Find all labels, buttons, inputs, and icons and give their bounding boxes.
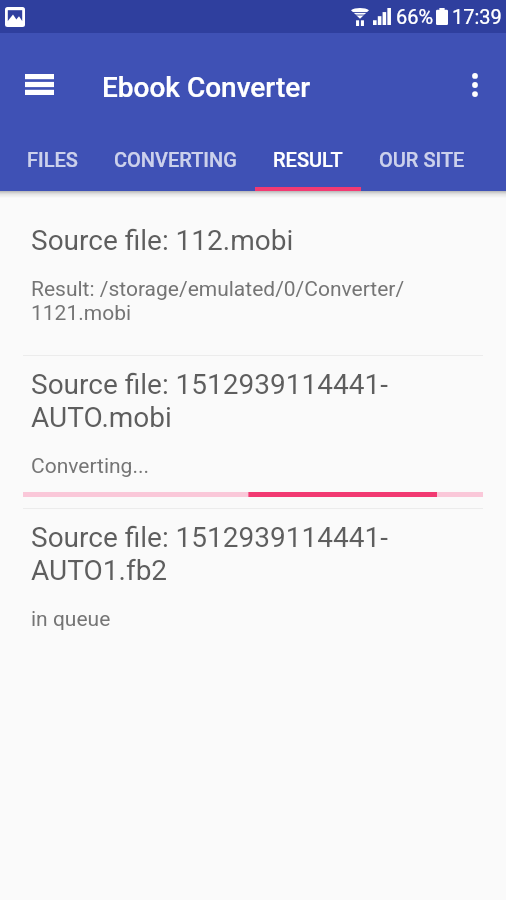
staticText: RESULT — [273, 148, 343, 171]
staticText: 17:39 — [452, 5, 502, 28]
button[interactable]: More options — [446, 59, 503, 116]
button[interactable]: Source file: 112.mobi — [0, 212, 506, 355]
staticText: Source file: 112.mobi — [31, 224, 294, 257]
staticText: Ebook Converter — [102, 71, 311, 104]
button[interactable]: OUR SITE — [361, 141, 483, 191]
button[interactable]: Source file: 1512939114441-AUTO.mobi — [0, 356, 506, 508]
staticText: Source file: 1512939114441-AUTO1.fb2 — [31, 521, 466, 587]
button[interactable]: RESULT — [255, 141, 361, 191]
button[interactable]: Source file: 1512939114441-AUTO1.fb2 — [0, 509, 506, 664]
staticText: Source file: 1512939114441-AUTO.mobi — [31, 368, 466, 434]
button[interactable]: Open navigation drawer — [11, 59, 68, 116]
staticText: CONVERTING — [114, 148, 237, 171]
staticText: in queue — [31, 607, 111, 632]
button[interactable]: FILES — [9, 141, 96, 191]
staticText: Result: /storage/emulated/0/Converter/11… — [31, 277, 431, 325]
staticText: Converting... — [31, 454, 150, 479]
staticText: FILES — [27, 148, 78, 171]
staticText: 66% — [396, 5, 434, 28]
button[interactable]: CONVERTING — [96, 141, 255, 191]
staticText: OUR SITE — [379, 148, 465, 171]
